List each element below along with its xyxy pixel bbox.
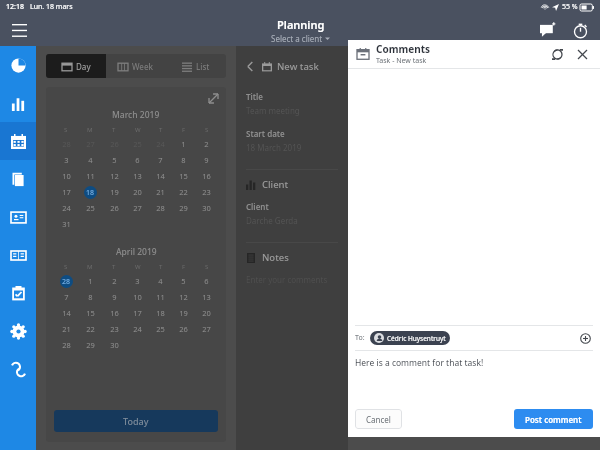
button[interactable]: 24 <box>54 200 78 216</box>
button[interactable]: 15 <box>78 305 102 321</box>
button[interactable]: 31 <box>54 216 78 232</box>
button[interactable]: 2 <box>102 273 126 289</box>
button[interactable]: 22 <box>172 184 195 200</box>
button[interactable]: 23 <box>102 321 126 337</box>
button[interactable]: Tasks <box>0 274 36 312</box>
button[interactable]: Add comment <box>536 18 560 42</box>
button[interactable]: Close <box>573 45 591 63</box>
button[interactable]: 21 <box>149 184 172 200</box>
button[interactable]: 29 <box>78 337 102 353</box>
button[interactable]: 22 <box>78 321 102 337</box>
button[interactable]: 20 <box>126 184 149 200</box>
button[interactable]: 18 <box>149 305 172 321</box>
button[interactable]: Planning <box>0 122 36 160</box>
button[interactable]: 5 <box>172 273 195 289</box>
button[interactable]: Settings <box>0 312 36 350</box>
button[interactable]: 9 <box>102 289 126 305</box>
button[interactable]: 15 <box>172 168 195 184</box>
button[interactable]: 16 <box>195 168 218 184</box>
button[interactable]: Cancel <box>366 409 391 429</box>
button[interactable]: 4 <box>149 273 172 289</box>
button[interactable]: Integrations <box>0 350 36 388</box>
staticText: List <box>196 61 210 72</box>
button[interactable]: 14 <box>54 305 78 321</box>
button[interactable]: 1 <box>172 136 195 152</box>
button[interactable]: 13 <box>195 289 218 305</box>
staticText: Darche Gerda <box>246 215 298 226</box>
button[interactable]: 28 <box>60 275 73 288</box>
button[interactable]: 12 <box>172 289 195 305</box>
button[interactable]: 4 <box>78 152 102 168</box>
button[interactable]: 7 <box>54 289 78 305</box>
button[interactable]: 2 <box>195 136 218 152</box>
button[interactable]: Menu <box>8 19 30 41</box>
button[interactable]: 11 <box>149 289 172 305</box>
button[interactable]: 21 <box>54 321 78 337</box>
button[interactable]: 8 <box>172 152 195 168</box>
button[interactable]: 26 <box>172 321 195 337</box>
button[interactable]: Day <box>46 54 106 78</box>
button[interactable]: 17 <box>126 305 149 321</box>
button[interactable]: Add recipient <box>577 330 593 346</box>
staticText: 30 <box>110 340 119 350</box>
button[interactable]: New task <box>246 60 319 73</box>
staticText: 20 <box>202 308 211 318</box>
button[interactable]: 26 <box>102 200 126 216</box>
button[interactable]: Post comment <box>525 409 582 429</box>
button[interactable]: 23 <box>195 184 218 200</box>
staticText: Enter your comments <box>246 274 328 285</box>
button[interactable]: Documents <box>0 160 36 198</box>
staticText: 25 <box>86 203 95 213</box>
button[interactable]: Refresh <box>548 45 566 63</box>
button[interactable]: 25 <box>149 321 172 337</box>
button[interactable]: List <box>166 54 226 78</box>
button[interactable]: Week <box>106 54 166 78</box>
button[interactable]: 5 <box>102 152 126 168</box>
button[interactable]: 30 <box>195 200 218 216</box>
staticText: M <box>87 263 93 271</box>
button[interactable]: 29 <box>172 200 195 216</box>
button[interactable]: 7 <box>149 152 172 168</box>
staticText: 27 <box>86 139 95 149</box>
button[interactable]: Select a client <box>271 33 330 44</box>
button[interactable]: 28 <box>54 337 78 353</box>
button[interactable]: 18 <box>84 186 97 199</box>
button[interactable]: 27 <box>126 200 149 216</box>
button[interactable]: 10 <box>54 168 78 184</box>
button[interactable]: 12 <box>102 168 126 184</box>
button[interactable]: 19 <box>172 305 195 321</box>
button[interactable]: 8 <box>78 289 102 305</box>
button[interactable]: 11 <box>78 168 102 184</box>
button[interactable]: 1 <box>78 273 102 289</box>
button[interactable]: 10 <box>126 289 149 305</box>
button[interactable]: 3 <box>126 273 149 289</box>
button[interactable]: 6 <box>195 273 218 289</box>
button[interactable]: Reports <box>0 84 36 122</box>
button[interactable]: 24 <box>126 321 149 337</box>
button[interactable]: 25 <box>78 200 102 216</box>
button[interactable]: Expand <box>206 91 220 105</box>
button[interactable]: Today <box>54 410 218 432</box>
button[interactable]: 9 <box>195 152 218 168</box>
button[interactable]: Timer <box>568 18 592 42</box>
button[interactable]: Dashboard <box>0 46 36 84</box>
button[interactable]: 28 <box>149 200 172 216</box>
button[interactable]: Contacts <box>0 198 36 236</box>
button[interactable]: Library <box>0 236 36 274</box>
button[interactable]: 14 <box>149 168 172 184</box>
button[interactable]: 30 <box>102 337 126 353</box>
button[interactable]: 3 <box>54 152 78 168</box>
button[interactable]: 20 <box>195 305 218 321</box>
button[interactable]: Cédric Huysentruyt <box>374 331 446 345</box>
button[interactable]: 16 <box>102 305 126 321</box>
button[interactable]: 19 <box>102 184 126 200</box>
button[interactable]: 27 <box>195 321 218 337</box>
button[interactable]: 13 <box>126 168 149 184</box>
button[interactable]: 17 <box>54 184 78 200</box>
button[interactable]: 6 <box>126 152 149 168</box>
